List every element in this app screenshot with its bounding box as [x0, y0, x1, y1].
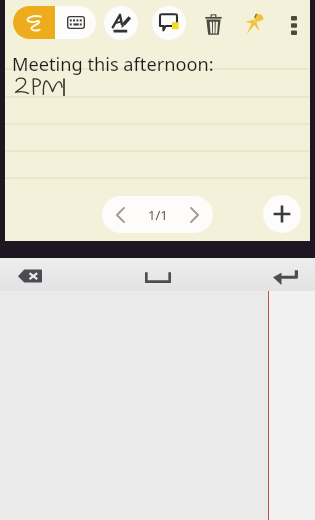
button[interactable]: More options	[283, 8, 301, 38]
button[interactable]: Space	[143, 267, 173, 287]
staticText: Meeting this afternoon:	[12, 52, 214, 77]
button[interactable]: Keyboard mode	[55, 6, 96, 39]
button[interactable]: Next page	[176, 196, 213, 233]
button[interactable]: Add page	[263, 195, 301, 233]
button[interactable]: Delete	[197, 7, 229, 39]
button[interactable]: Shapes	[152, 6, 186, 40]
button[interactable]: Text recognition	[104, 6, 138, 40]
button[interactable]: Enter	[271, 266, 299, 288]
button[interactable]: Pin	[239, 7, 271, 39]
button[interactable]: Handwriting mode	[13, 6, 55, 39]
button[interactable]: Backspace	[16, 266, 44, 286]
button[interactable]: Previous page	[102, 196, 139, 233]
staticText: 1/1	[148, 206, 168, 224]
